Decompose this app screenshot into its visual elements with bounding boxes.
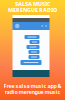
staticText: SALSA MUSIC (15, 0, 50, 8)
staticText: Free salsa music app & (3, 82, 61, 90)
staticText: MERENGUE RADIO (8, 6, 57, 14)
staticText: radio merengue music (4, 88, 60, 96)
